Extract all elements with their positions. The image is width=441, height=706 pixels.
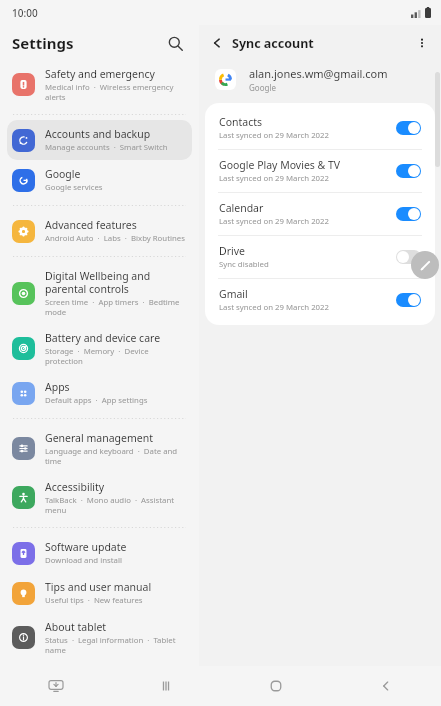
button[interactable]: Back <box>206 32 228 54</box>
button[interactable] <box>396 293 421 307</box>
button[interactable] <box>396 164 421 178</box>
button[interactable]: Battery and device care <box>7 324 192 373</box>
button[interactable]: Apps <box>7 373 192 413</box>
staticText: Sync account <box>232 35 314 52</box>
staticText: Tips and user manual <box>45 580 152 594</box>
staticText: About tablet <box>45 620 107 634</box>
staticText: Download and install <box>45 555 122 566</box>
staticText: Drive <box>219 244 245 258</box>
staticText: Contacts <box>219 115 263 129</box>
button[interactable]: About tablet <box>7 613 192 662</box>
button[interactable]: Calendar <box>205 193 435 235</box>
staticText: Safety and emergency <box>45 67 155 81</box>
staticText: Apps <box>45 380 70 394</box>
button[interactable]: Accounts and backup <box>7 120 192 160</box>
staticText: Manage accounts · Smart Switch <box>45 142 168 153</box>
button[interactable]: Google <box>7 160 192 200</box>
button[interactable]: Recents <box>111 666 221 706</box>
button[interactable] <box>396 121 421 135</box>
staticText: Default apps · App settings <box>45 395 148 406</box>
button[interactable]: More options <box>411 32 433 54</box>
staticText: Last synced on 29 March 2022 <box>219 173 329 184</box>
staticText: Last synced on 29 March 2022 <box>219 302 329 313</box>
staticText: Android Auto · Labs · Bixby Routines <box>45 233 185 244</box>
staticText: TalkBack · Mono audio · Assistant menu <box>45 495 186 515</box>
button[interactable]: Contacts <box>205 107 435 149</box>
button[interactable]: Software update <box>7 533 192 573</box>
button[interactable]: Search <box>163 31 187 55</box>
button[interactable]: Digital Wellbeing and parental controls <box>7 262 192 324</box>
button[interactable]: Advanced features <box>7 211 192 251</box>
staticText: General management <box>45 431 153 445</box>
button[interactable]: Tips and user manual <box>7 573 192 613</box>
staticText: Last synced on 29 March 2022 <box>219 130 329 141</box>
button[interactable] <box>396 207 421 221</box>
staticText: Screen time · App timers · Bedtime mode <box>45 297 186 317</box>
button[interactable]: Accessibility <box>7 473 192 522</box>
staticText: Storage · Memory · Device protection <box>45 346 186 366</box>
staticText: Gmail <box>219 287 248 301</box>
staticText: Calendar <box>219 201 264 215</box>
staticText: Google Play Movies & TV <box>219 158 341 172</box>
staticText: Battery and device care <box>45 331 161 345</box>
staticText: Google <box>249 82 276 93</box>
staticText: Digital Wellbeing and parental controls <box>45 269 186 296</box>
button[interactable]: Edit <box>411 251 439 279</box>
staticText: Sync disabled <box>219 259 269 270</box>
button[interactable]: Home <box>221 666 331 706</box>
button[interactable]: Back <box>331 666 441 706</box>
staticText: Google <box>45 167 81 181</box>
staticText: Status · Legal information · Tablet name <box>45 635 186 655</box>
staticText: Last synced on 29 March 2022 <box>219 216 329 227</box>
button[interactable]: General management <box>7 424 192 473</box>
button[interactable]: alan.jones.wm@gmail.com <box>199 60 441 103</box>
staticText: Useful tips · New features <box>45 595 143 606</box>
staticText: Medical info · Wireless emergency alerts <box>45 82 186 102</box>
staticText: 10:00 <box>12 6 38 20</box>
staticText: alan.jones.wm@gmail.com <box>249 66 388 81</box>
staticText: Software update <box>45 540 127 554</box>
staticText: Accessibility <box>45 480 105 494</box>
staticText: Language and keyboard · Date and time <box>45 446 186 466</box>
staticText: Accounts and backup <box>45 127 151 141</box>
button[interactable]: Gmail <box>205 279 435 321</box>
button[interactable] <box>396 250 421 264</box>
staticText: Advanced features <box>45 218 137 232</box>
button[interactable]: Drive <box>205 236 435 278</box>
staticText: Google services <box>45 182 103 193</box>
button[interactable]: Safety and emergency <box>7 60 192 109</box>
staticText: Settings <box>12 33 74 53</box>
button[interactable]: Screenshot <box>0 666 111 706</box>
button[interactable]: Google Play Movies & TV <box>205 150 435 192</box>
